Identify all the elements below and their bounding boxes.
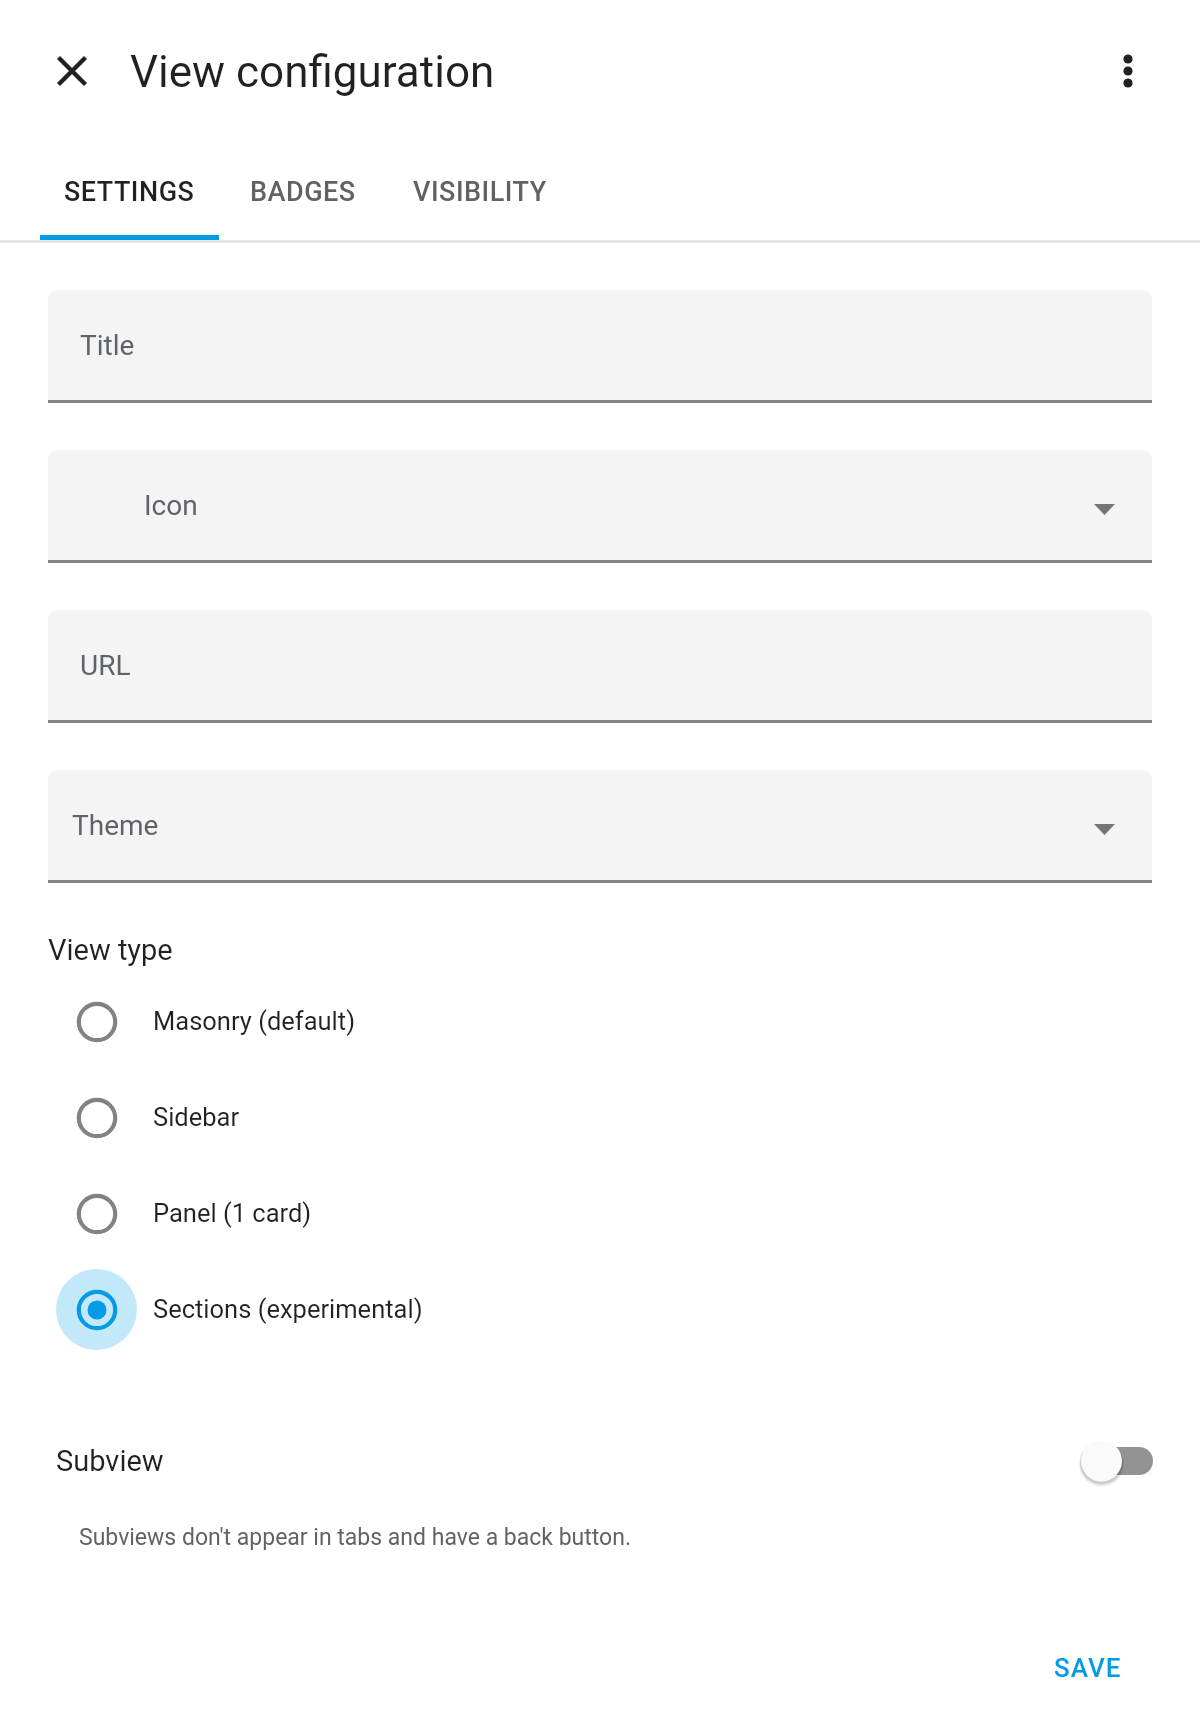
staticText: Sections (experimental)	[153, 1294, 423, 1324]
staticText: VISIBILITY	[413, 176, 547, 208]
button[interactable]: Panel (1 card)	[0, 1165, 1200, 1261]
staticText: Masonry (default)	[153, 1006, 356, 1036]
staticText: Title	[80, 329, 135, 362]
staticText: Sidebar	[153, 1102, 240, 1132]
button[interactable]: SETTINGS	[40, 144, 219, 240]
button[interactable]: BADGES	[226, 144, 380, 240]
staticText: SETTINGS	[64, 176, 195, 208]
button[interactable]: Close	[24, 23, 120, 119]
staticText: Subviews don't appear in tabs and have a…	[79, 1524, 631, 1551]
button[interactable]: Masonry (default)	[0, 973, 1200, 1069]
button[interactable]: URL	[48, 610, 1152, 720]
button[interactable]: Icon	[48, 450, 1152, 560]
staticText: View configuration	[130, 46, 495, 98]
staticText: Subview	[56, 1444, 164, 1478]
staticText: View type	[48, 933, 173, 967]
button[interactable]: Theme	[48, 770, 1152, 880]
staticText: URL	[80, 649, 131, 682]
staticText: Icon	[144, 489, 198, 522]
staticText: SAVE	[1054, 1653, 1122, 1683]
button[interactable]: Subview switch, off	[1081, 1433, 1153, 1489]
button[interactable]: Title	[48, 290, 1152, 400]
staticText: BADGES	[250, 176, 356, 208]
button[interactable]: SAVE	[1022, 1632, 1154, 1704]
button[interactable]: Sidebar	[0, 1069, 1200, 1165]
button[interactable]: Sections (experimental)	[0, 1261, 1200, 1357]
button[interactable]: More options	[1080, 23, 1176, 119]
button[interactable]: VISIBILITY	[389, 144, 571, 240]
staticText: Theme	[72, 809, 159, 842]
staticText: Panel (1 card)	[153, 1198, 312, 1228]
button[interactable]: Subview	[0, 1425, 1200, 1497]
